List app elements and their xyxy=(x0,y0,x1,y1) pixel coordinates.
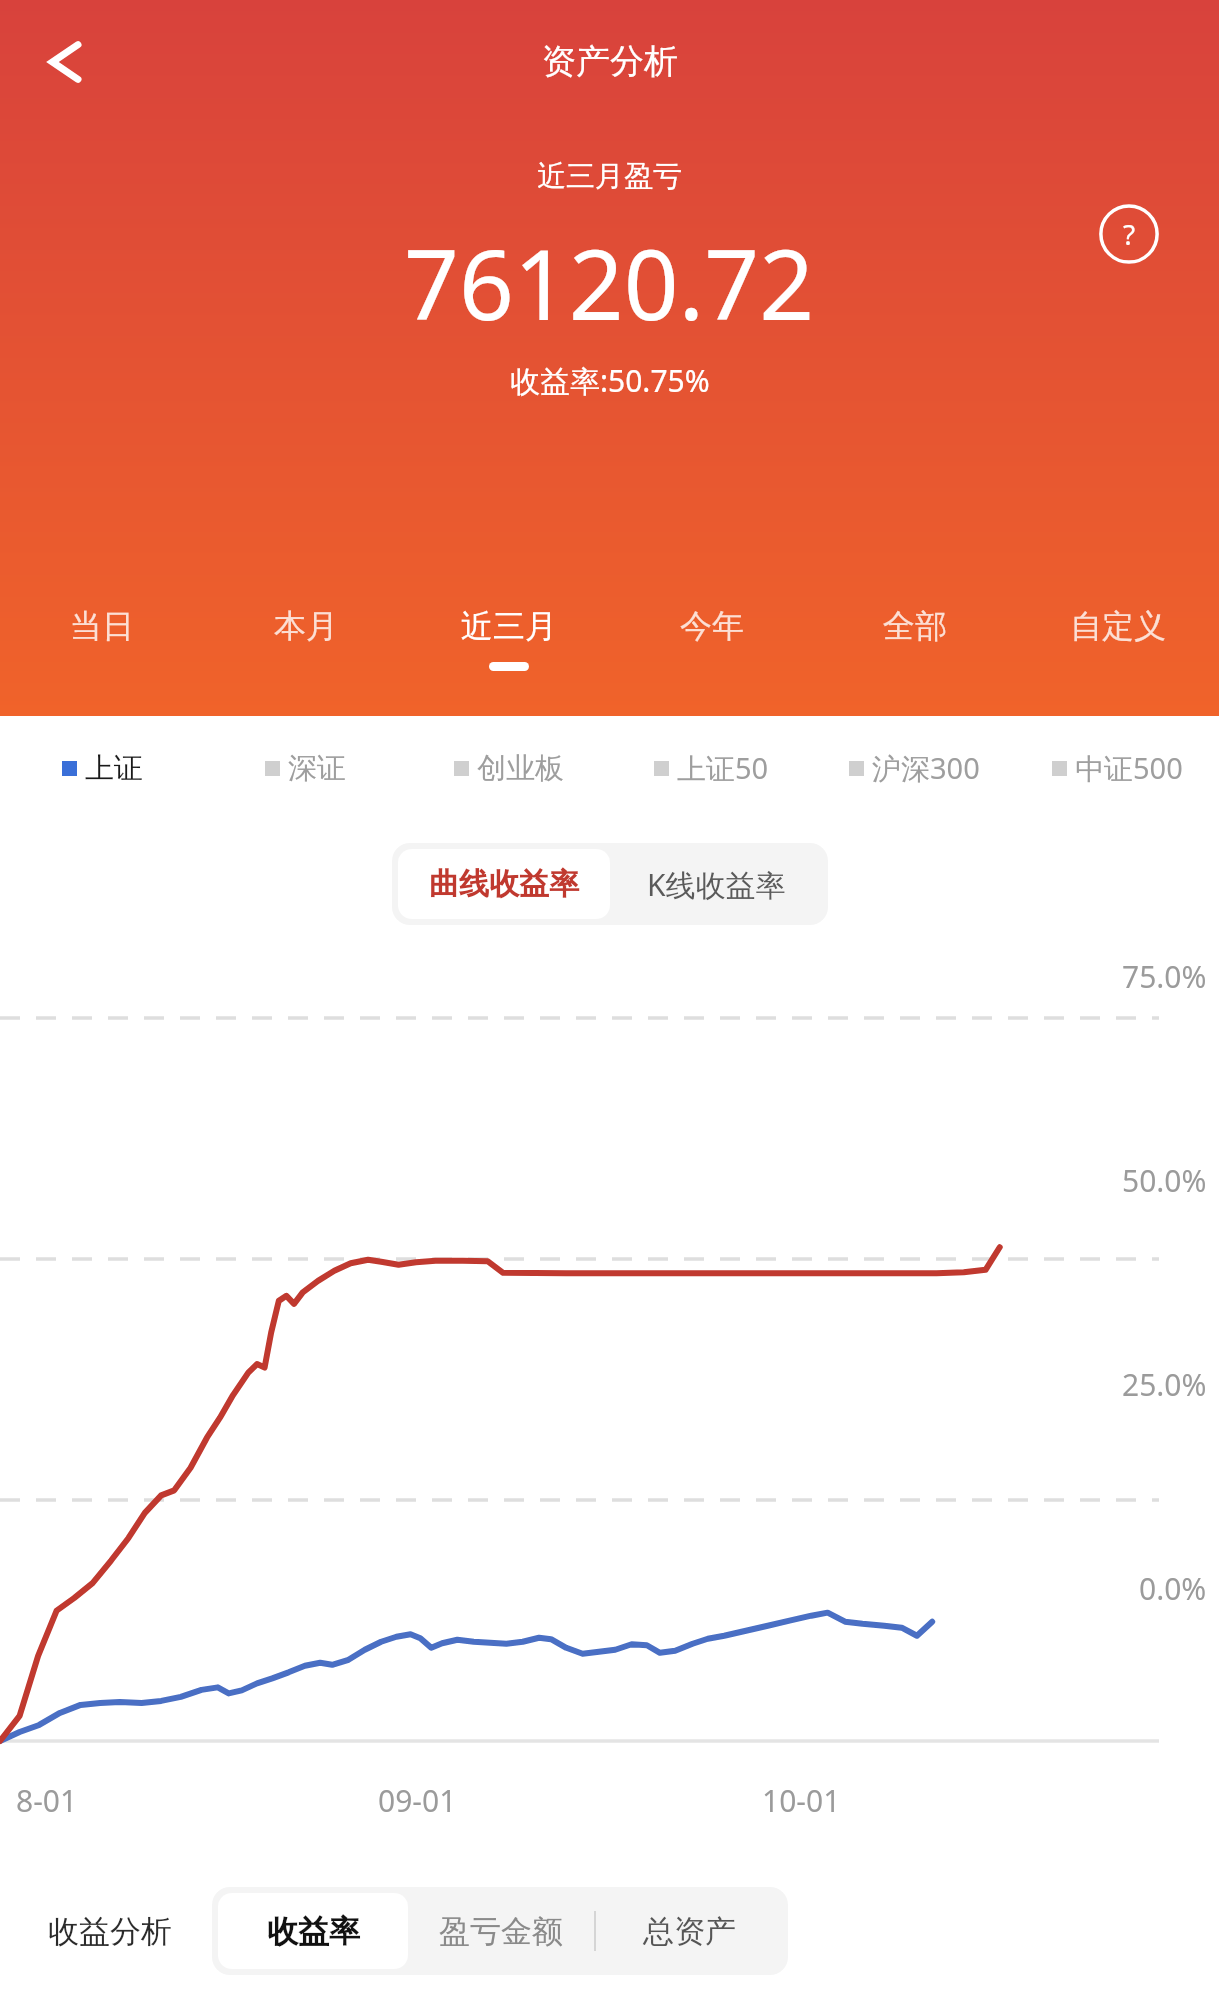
staticText: K线收益率 xyxy=(647,864,786,905)
staticText: 自定义 xyxy=(1070,606,1166,646)
staticText: 09-01 xyxy=(378,1780,457,1821)
button[interactable]: 当日 xyxy=(0,586,204,716)
button[interactable]: 上证50 xyxy=(610,716,813,820)
button[interactable]: 沪深300 xyxy=(813,716,1016,820)
button[interactable]: 近三月 xyxy=(407,586,610,716)
staticText: 近三月盈亏 xyxy=(537,158,682,195)
staticText: 上证 xyxy=(85,750,143,787)
staticText: 收益率:50.75% xyxy=(510,360,710,401)
button[interactable]: 自定义 xyxy=(1016,586,1219,716)
staticText: 中证500 xyxy=(1075,748,1183,788)
button[interactable]: 中证500 xyxy=(1016,716,1219,820)
button[interactable]: Back xyxy=(30,30,94,94)
button[interactable]: 收益率 xyxy=(218,1893,408,1969)
button[interactable]: 盈亏金额 xyxy=(408,1893,594,1969)
staticText: 深证 xyxy=(288,750,346,787)
staticText: 创业板 xyxy=(477,750,564,787)
staticText: 盈亏金额 xyxy=(439,1912,563,1951)
staticText: 上证50 xyxy=(677,748,769,788)
staticText: 75.0% xyxy=(1122,956,1207,997)
staticText: 资产分析 xyxy=(542,40,678,83)
button[interactable]: 深证 xyxy=(204,716,407,820)
staticText: 总资产 xyxy=(643,1912,736,1951)
button[interactable]: 创业板 xyxy=(407,716,610,820)
staticText: 沪深300 xyxy=(872,748,980,788)
button[interactable]: 本月 xyxy=(204,586,407,716)
staticText: 本月 xyxy=(274,606,338,646)
staticText: 收益分析 xyxy=(48,1912,172,1951)
button[interactable]: 曲线收益率 xyxy=(398,849,610,919)
button[interactable]: Help xyxy=(1091,196,1167,272)
button[interactable]: 总资产 xyxy=(596,1893,782,1969)
staticText: 76120.72 xyxy=(404,217,815,348)
button[interactable]: 全部 xyxy=(813,586,1016,716)
staticText: 全部 xyxy=(883,606,947,646)
staticText: 近三月 xyxy=(461,606,557,646)
button[interactable]: 今年 xyxy=(610,586,813,716)
button[interactable]: K线收益率 xyxy=(610,849,822,919)
staticText: 0.0% xyxy=(1139,1568,1207,1609)
staticText: ? xyxy=(1123,215,1136,253)
staticText: 今年 xyxy=(680,606,744,646)
staticText: 当日 xyxy=(70,606,134,646)
staticText: 10-01 xyxy=(762,1780,841,1821)
staticText: 25.0% xyxy=(1122,1364,1207,1405)
staticText: 50.0% xyxy=(1122,1160,1207,1201)
staticText: 8-01 xyxy=(16,1780,78,1821)
staticText: 曲线收益率 xyxy=(429,865,579,903)
button[interactable]: 上证 xyxy=(0,716,204,820)
staticText: 收益率 xyxy=(267,1912,360,1951)
